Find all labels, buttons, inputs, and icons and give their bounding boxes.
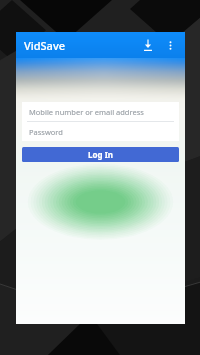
button[interactable]: More options — [160, 35, 180, 55]
staticText: VidSave — [24, 38, 66, 53]
button[interactable]: Log In — [22, 147, 179, 162]
staticText: Mobile number or email address — [29, 107, 144, 117]
button[interactable]: Download — [137, 34, 159, 56]
button[interactable]: Password — [22, 122, 179, 141]
staticText: Log In — [88, 149, 113, 160]
button[interactable]: Mobile number or email address — [22, 102, 179, 121]
staticText: Password — [29, 127, 63, 137]
